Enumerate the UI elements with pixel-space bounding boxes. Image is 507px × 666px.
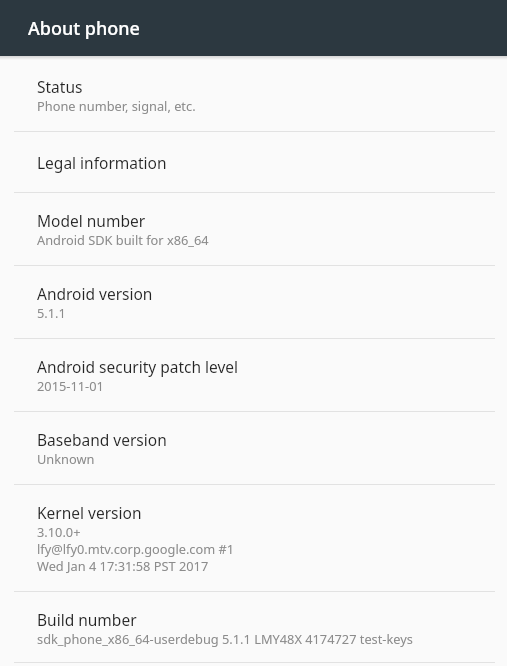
staticText: Kernel version — [37, 502, 142, 523]
button[interactable]: Model number — [0, 193, 507, 265]
staticText: Android security patch level — [37, 356, 239, 377]
staticText: Legal information — [37, 152, 167, 173]
button[interactable]: Status — [0, 60, 507, 131]
staticText: Android version — [37, 283, 153, 304]
staticText: Baseband version — [37, 429, 167, 450]
staticText: Build number — [37, 609, 137, 630]
button[interactable]: Legal information — [0, 132, 507, 192]
button[interactable]: Kernel version — [0, 485, 507, 591]
staticText: 3.10.0+ — [37, 523, 81, 540]
staticText: Status — [37, 76, 83, 97]
staticText: Wed Jan 4 17:31:58 PST 2017 — [37, 557, 209, 574]
staticText: sdk_phone_x86_64-userdebug 5.1.1 LMY48X … — [37, 630, 413, 647]
staticText: About phone — [28, 16, 140, 41]
button[interactable]: Baseband version — [0, 412, 507, 484]
staticText: Unknown — [37, 450, 95, 467]
staticText: Phone number, signal, etc. — [37, 97, 196, 114]
staticText: Model number — [37, 210, 146, 231]
button[interactable]: Android version — [0, 266, 507, 338]
button[interactable]: Android security patch level — [0, 339, 507, 411]
staticText: Android SDK built for x86_64 — [37, 231, 209, 248]
staticText: 2015-11-01 — [37, 377, 104, 394]
button[interactable]: Build number — [0, 592, 507, 662]
staticText: lfy@lfy0.mtv.corp.google.com #1 — [37, 540, 235, 557]
staticText: 5.1.1 — [37, 304, 66, 321]
